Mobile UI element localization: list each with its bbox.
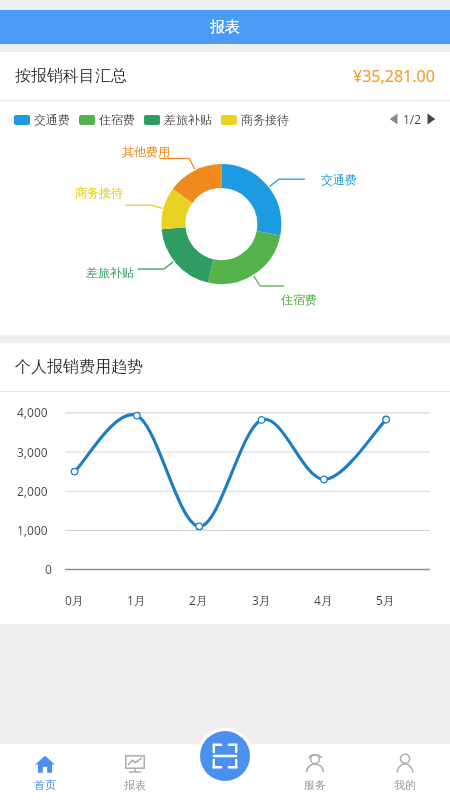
staticText: 交通费	[34, 112, 70, 127]
staticText: 住宿费	[99, 112, 135, 127]
button[interactable]: 扫一扫	[200, 731, 250, 781]
staticText: 报表	[124, 778, 146, 792]
staticText: 1,000	[17, 522, 48, 538]
button[interactable]: 差旅补贴	[144, 112, 212, 127]
staticText: 1月	[127, 592, 146, 608]
staticText: 商务接待	[75, 185, 123, 200]
button[interactable]: 服务	[270, 744, 360, 800]
staticText: 4月	[314, 592, 333, 608]
button[interactable]: 商务接待	[221, 112, 289, 127]
button[interactable]: 我的	[360, 744, 450, 800]
staticText: 商务接待	[241, 112, 289, 127]
button[interactable]: 报表	[90, 744, 180, 800]
button[interactable]: 上一页	[387, 110, 401, 128]
button[interactable]: 交通费	[14, 112, 70, 127]
staticText: 按报销科目汇总	[15, 66, 127, 86]
staticText: 我的	[394, 778, 416, 792]
staticText: 个人报销费用趋势	[15, 357, 143, 377]
staticText: 0	[45, 561, 52, 577]
button[interactable]: 下一页	[424, 110, 438, 128]
staticText: 5月	[376, 592, 395, 608]
staticText: 2,000	[17, 483, 48, 499]
staticText: 交通费	[321, 172, 357, 187]
staticText: 报表	[210, 18, 240, 37]
staticText: 3月	[252, 592, 271, 608]
staticText: 3,000	[17, 444, 48, 460]
staticText: 服务	[304, 778, 326, 792]
staticText: ¥35,281.00	[353, 65, 435, 87]
button[interactable]: 按报销科目汇总	[0, 52, 450, 100]
staticText: 2月	[189, 592, 208, 608]
staticText: 1/2	[403, 111, 422, 127]
button[interactable]: 个人报销费用趋势	[0, 343, 450, 391]
staticText: 4,000	[17, 404, 48, 420]
staticText: 差旅补贴	[86, 265, 134, 280]
button[interactable]: 首页	[0, 744, 90, 800]
staticText: 住宿费	[281, 292, 317, 307]
button[interactable]: 住宿费	[79, 112, 135, 127]
staticText: 差旅补贴	[164, 112, 212, 127]
staticText: 其他费用	[122, 144, 170, 159]
staticText: 首页	[34, 778, 56, 792]
staticText: 0月	[65, 592, 84, 608]
